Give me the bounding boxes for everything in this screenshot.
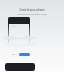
button[interactable]: Next [19, 53, 30, 56]
staticText: Control your phone [19, 8, 45, 12]
button[interactable]: Bottom action card [5, 63, 35, 71]
staticText: and set up preferences easily [17, 13, 47, 16]
